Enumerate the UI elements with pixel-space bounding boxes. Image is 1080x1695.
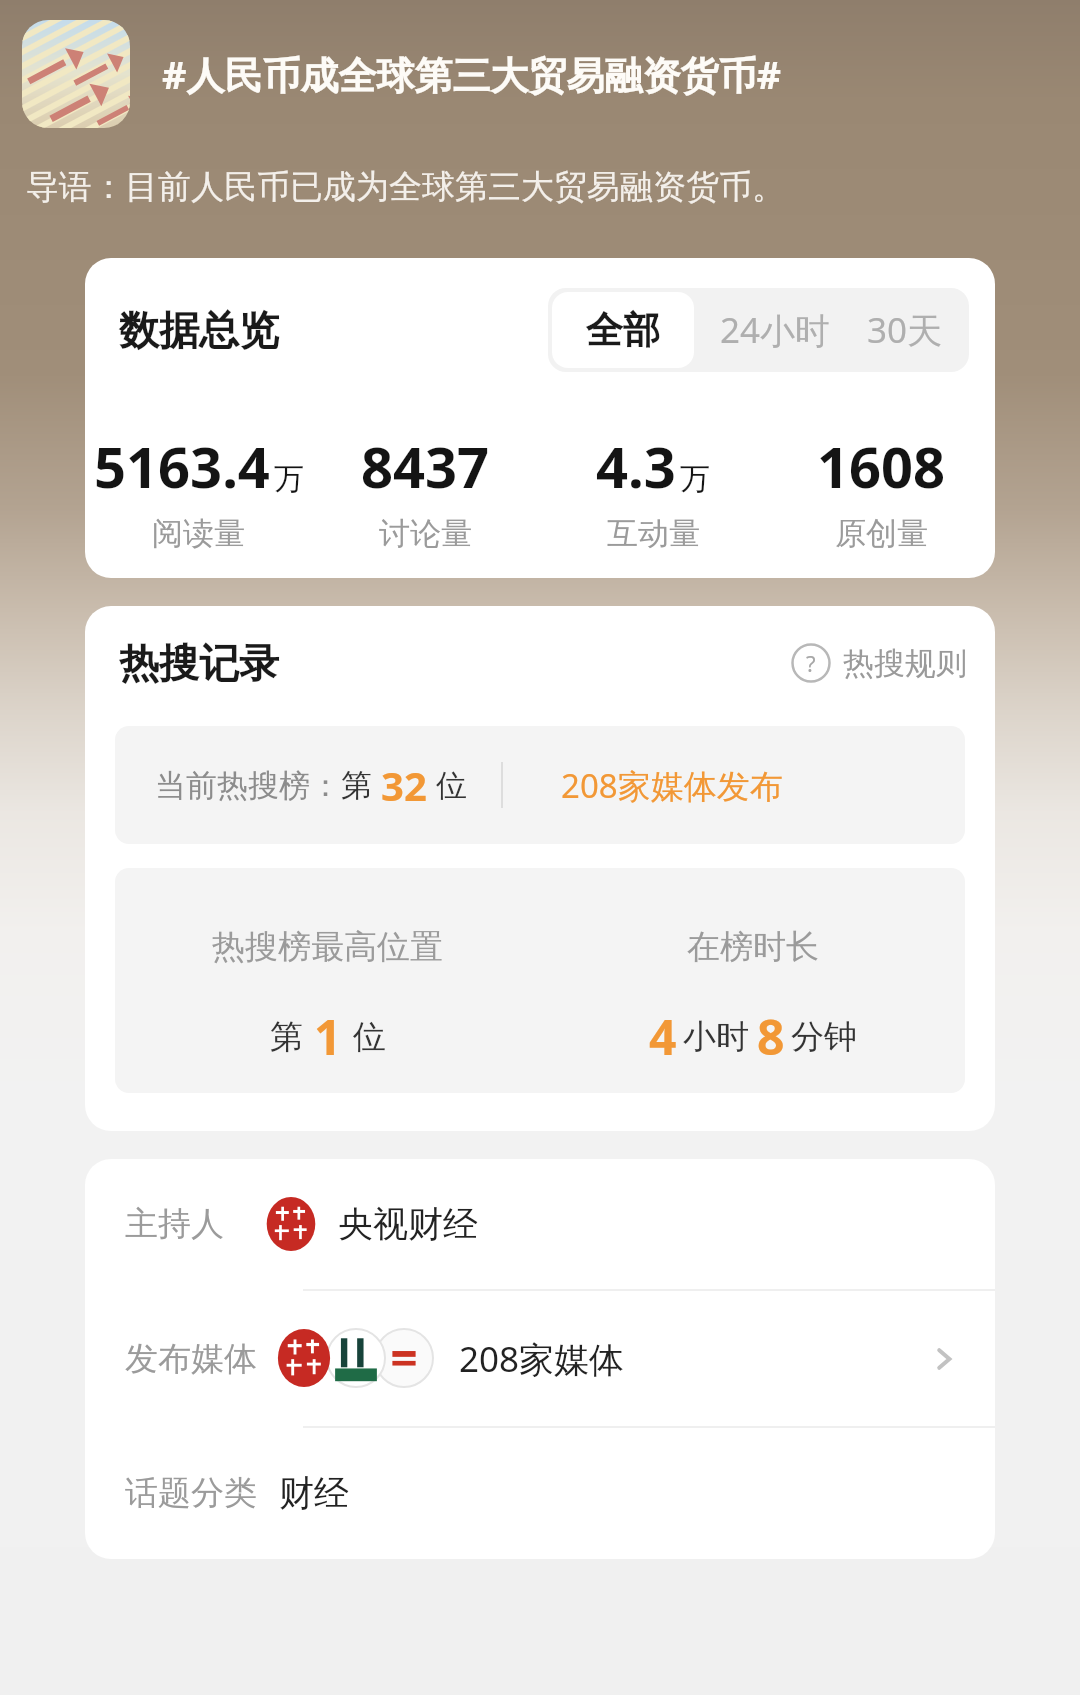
staticText: 32	[381, 758, 427, 812]
staticText: 话题分类	[125, 1472, 257, 1514]
staticText: #人民币成全球第三大贸易融资货币#	[162, 48, 782, 100]
button[interactable]: 发布媒体	[85, 1291, 995, 1426]
button[interactable]: 全部	[552, 292, 694, 368]
button[interactable]: 当前热搜榜：	[115, 726, 965, 844]
staticText: 阅读量	[152, 514, 245, 553]
button[interactable]: 热搜规则说明	[791, 643, 967, 683]
staticText: 8	[757, 1004, 785, 1069]
staticText: 第	[270, 1016, 303, 1058]
staticText: 财经	[279, 1471, 349, 1515]
staticText: 208家媒体发布	[561, 763, 783, 808]
button[interactable]: 热搜榜最高位置	[115, 868, 965, 1093]
staticText: 热搜记录	[119, 638, 279, 688]
button[interactable]: 30天	[853, 288, 969, 372]
staticText: 讨论量	[379, 514, 472, 553]
staticText: ?	[806, 648, 816, 678]
staticText: 发布媒体	[125, 1338, 257, 1380]
staticText: 位	[353, 1016, 386, 1058]
staticText: 30天	[867, 306, 943, 354]
staticText: 5163.4	[94, 428, 270, 504]
staticText: 央视财经	[338, 1202, 478, 1246]
staticText: 4.3	[596, 428, 676, 504]
staticText: 万	[274, 460, 304, 498]
staticText: 24小时	[720, 306, 831, 354]
staticText: 热搜规则	[843, 644, 967, 683]
staticText: 小时	[683, 1016, 749, 1058]
button[interactable]: 24小时	[698, 288, 853, 372]
staticText: 导语：目前人民币已成为全球第三大贸易融资货币。	[26, 166, 785, 208]
staticText: 分钟	[791, 1016, 857, 1058]
staticText: 1	[314, 1004, 342, 1069]
staticText: 位	[436, 766, 467, 805]
staticText: 互动量	[607, 514, 700, 553]
staticText: 原创量	[835, 514, 928, 553]
other: 查看全部媒体	[927, 1342, 961, 1376]
button[interactable]: 主持人	[85, 1159, 995, 1289]
staticText: 1608	[817, 428, 946, 504]
button[interactable]: 话题分类	[85, 1428, 995, 1558]
staticText: 4	[649, 1004, 677, 1069]
staticText: 8437	[361, 428, 490, 504]
button[interactable]: 话题封面	[22, 20, 130, 128]
staticText: 第	[341, 766, 372, 805]
staticText: 主持人	[125, 1203, 224, 1245]
staticText: 全部	[586, 307, 660, 354]
staticText: 数据总览	[119, 305, 279, 355]
other: 热搜规则说明	[791, 643, 831, 683]
staticText: 在榜时长	[687, 926, 819, 968]
staticText: 万	[680, 460, 710, 498]
staticText: 当前热搜榜：	[155, 766, 341, 805]
staticText: 208家媒体	[459, 1335, 625, 1383]
staticText: 热搜榜最高位置	[212, 926, 443, 968]
